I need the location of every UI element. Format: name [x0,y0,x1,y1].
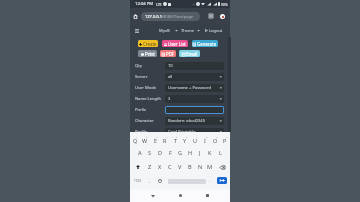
button[interactable]: Generate [192,40,218,47]
button[interactable]: Menu [134,28,140,34]
staticText: X [158,163,162,171]
staticText: Random: abcd2345 [168,118,206,124]
button[interactable]: 3 [165,95,224,103]
button[interactable]: A [135,146,145,160]
button[interactable]: Tabs [207,12,215,20]
button[interactable]: T [170,132,180,146]
staticText: N [198,163,203,171]
staticText: F [169,149,172,157]
button[interactable]: Logout [205,28,223,33]
button[interactable]: F [165,146,175,160]
button[interactable]: U [190,132,200,146]
button[interactable]: Enter [217,177,227,184]
button[interactable]: K [205,146,215,160]
button[interactable]: C [165,160,175,174]
button[interactable]: Q [130,132,140,146]
button[interactable]: V [175,160,185,174]
button[interactable]: MyeB [159,28,170,33]
staticText: I [204,137,206,144]
staticText: . [209,178,211,184]
button[interactable]: ?123 [132,174,143,188]
button[interactable]: Back [147,190,158,201]
staticText: 12:04 PM [135,1,154,7]
staticText: 9 [216,135,218,138]
staticText: Logout [209,28,223,33]
button[interactable]: I [200,132,210,146]
staticText: · [193,2,195,7]
staticText: Name Length [135,96,165,102]
button[interactable]: 10 [165,62,224,70]
button[interactable]: , [146,174,154,188]
button[interactable]: PDF [160,50,176,57]
staticText: 8 [206,135,208,138]
button[interactable]: E [150,132,160,146]
button[interactable]: S [145,146,155,160]
button[interactable]: Random: abcd2345 [165,117,224,125]
button[interactable]: all [165,73,224,81]
button[interactable]: Theme [181,28,194,33]
button[interactable]: H [185,146,195,160]
button[interactable]: X [155,160,165,174]
staticText: 0 [226,135,228,138]
staticText: Y [183,137,187,144]
button[interactable]: Y [180,132,190,146]
button[interactable]: L [215,146,225,160]
button[interactable]: Backspace [215,160,230,174]
button[interactable]: More options [218,12,227,21]
staticText: , [149,178,151,184]
button[interactable]: J [195,146,205,160]
button[interactable]: M [205,160,215,174]
button[interactable]: Username + Password [165,84,224,92]
button[interactable]: Email [179,50,200,57]
staticText: U [193,137,197,144]
staticText: 3 [168,96,171,102]
button[interactable]: Create [138,40,158,47]
staticText: User List [168,41,186,47]
button[interactable]: Shift [130,160,145,174]
button[interactable]: User List [162,40,188,47]
staticText: all [168,74,173,80]
staticText: 2 [146,135,148,138]
staticText: S [148,149,152,157]
staticText: J [199,149,201,157]
staticText: R [163,137,167,144]
staticText: ?123 [134,179,141,183]
button[interactable]: Home [175,190,186,201]
staticText: 127.0.0.1 [145,14,162,19]
staticText: C [168,163,172,171]
button[interactable]: B [185,160,195,174]
staticText: 7 [196,135,198,138]
button[interactable]: G [175,146,185,160]
staticText: 5 [176,135,178,138]
button[interactable]: Card Printable [165,128,224,136]
button[interactable]: W [140,132,150,146]
staticText: Theme [181,28,194,33]
staticText: Q [133,137,138,144]
button[interactable]: D [155,146,165,160]
button[interactable]: O [210,132,220,146]
staticText: L [219,149,222,157]
staticText: Profile [135,129,165,135]
button[interactable] [165,106,224,114]
staticText: M [207,163,213,171]
button[interactable]: Print [138,50,157,57]
button[interactable]: Recents [202,190,213,201]
staticText: 10 [168,63,173,69]
staticText: D [158,149,163,157]
staticText: A [138,149,142,157]
button[interactable]: R [160,132,170,146]
button[interactable]: Emoji [155,174,164,188]
button[interactable]: Z [145,160,155,174]
button[interactable]: Home [131,12,140,21]
button[interactable]: 127.0.0.1 [141,12,200,21]
staticText: 90% [221,2,228,7]
staticText: O [213,137,218,144]
staticText: Server [135,74,165,80]
button[interactable]: N [195,160,205,174]
button[interactable]: P [220,132,230,146]
staticText: Email [186,51,198,57]
staticText: :8080/?hostpage [162,14,194,19]
staticText: B [188,163,192,171]
